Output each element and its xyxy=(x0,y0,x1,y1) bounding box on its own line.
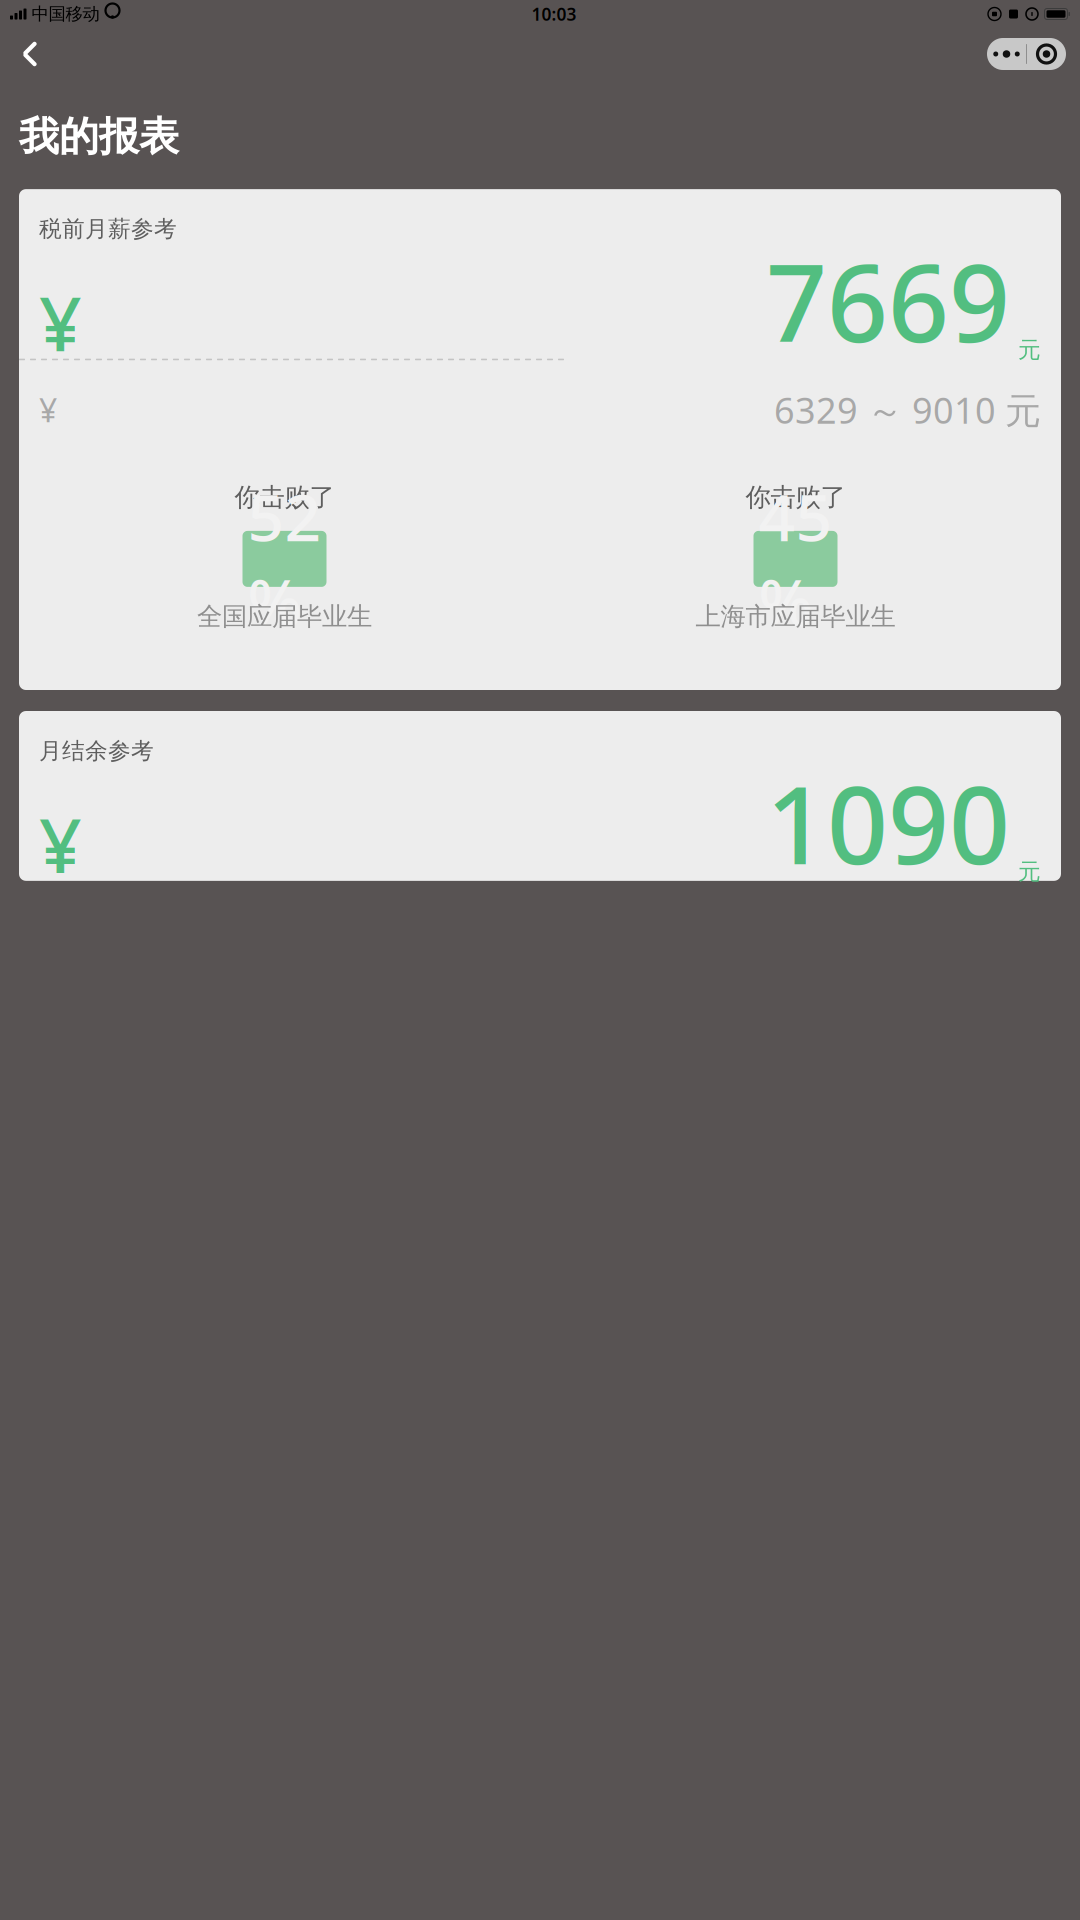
staticText: 7669 xyxy=(766,230,1010,372)
staticText: 月结余参考 xyxy=(39,737,154,765)
staticText: 52% xyxy=(247,474,321,644)
staticText: 你击败了 xyxy=(234,482,334,513)
button[interactable]: More xyxy=(987,38,1026,70)
staticText: 我的报表 xyxy=(19,112,179,161)
button[interactable]: Back xyxy=(8,32,52,76)
staticText: ¥ xyxy=(39,273,82,372)
staticText: 10:03 xyxy=(531,2,576,25)
staticText: 6329 ～ 9010 元 xyxy=(774,386,1041,434)
staticText: 你击败了 xyxy=(745,482,845,513)
staticText: 45% xyxy=(758,474,832,644)
staticText: 税前月薪参考 xyxy=(39,215,177,243)
staticText: 中国移动 xyxy=(31,3,99,25)
staticText: ¥ xyxy=(39,389,57,431)
staticText: ¥ xyxy=(39,794,82,894)
staticText: 全国应届毕业生 xyxy=(197,601,372,632)
button[interactable]: Close xyxy=(1027,38,1066,70)
staticText: 元 xyxy=(1018,336,1041,364)
staticText: 上海市应届毕业生 xyxy=(695,601,895,632)
staticText: 元 xyxy=(1018,858,1041,886)
staticText: 1090 xyxy=(766,752,1010,894)
